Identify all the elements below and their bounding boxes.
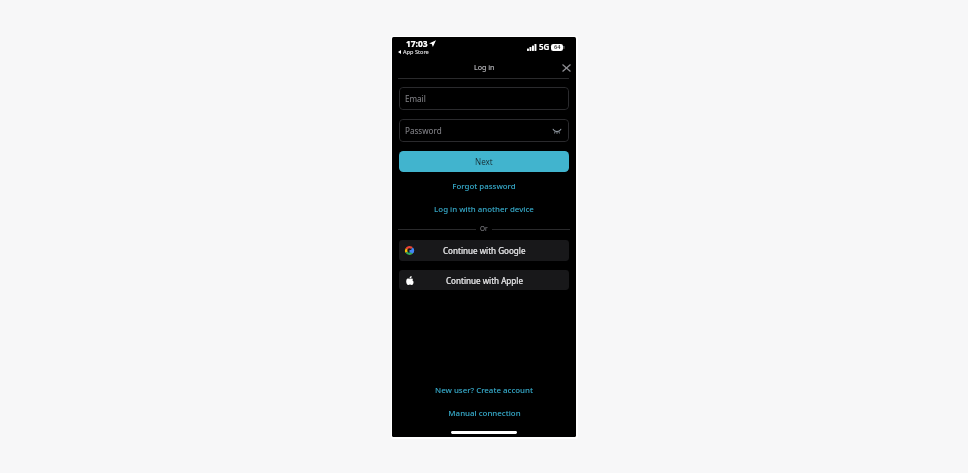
staticText: 17:03 [406,38,428,49]
staticText: 5G [539,41,550,52]
staticText: Continue with Apple [446,275,523,286]
button[interactable]: Forgot password [448,179,520,193]
staticText: Email [405,93,426,104]
staticText: Next [475,156,493,167]
staticText: App Store [403,48,429,56]
staticText: Password [405,125,442,136]
staticText: Continue with Google [443,245,526,256]
button[interactable]: Password [399,119,569,142]
button[interactable]: Manual connection [444,406,525,420]
button[interactable]: Close [558,60,574,76]
button[interactable]: Log in with another device [430,202,538,216]
button[interactable]: Continue with Apple [399,270,569,290]
staticText: New user? Create account [435,385,533,395]
button[interactable]: Show password [549,123,565,139]
staticText: Log in with another device [434,204,534,214]
button[interactable]: Next [399,151,569,172]
staticText: Manual connection [448,408,521,418]
staticText: Forgot password [452,181,516,191]
staticText: 64 [554,43,561,51]
staticText: Log in [474,62,495,72]
staticText: Or [480,224,488,233]
button[interactable]: Continue with Google [399,240,569,261]
button[interactable]: New user? Create account [431,383,537,397]
button[interactable]: Email [399,87,569,110]
